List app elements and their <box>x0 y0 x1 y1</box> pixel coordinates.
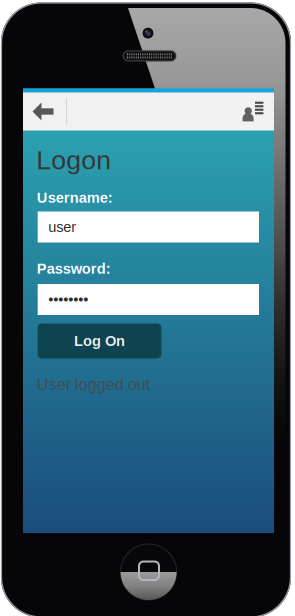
button[interactable]: Log On <box>38 323 161 358</box>
button[interactable]: Contacts <box>234 92 274 130</box>
staticText: Username: <box>37 189 113 206</box>
staticText: user <box>48 219 76 235</box>
staticText: Password: <box>37 260 111 277</box>
staticText: Logon <box>36 145 111 175</box>
staticText: Log On <box>74 333 125 349</box>
staticText: •••••••• <box>48 291 88 308</box>
staticText: User logged out <box>37 375 150 393</box>
button[interactable]: Back <box>23 92 66 130</box>
